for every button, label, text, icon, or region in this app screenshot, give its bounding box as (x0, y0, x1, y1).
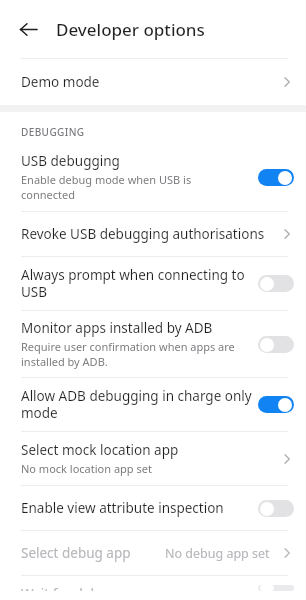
button[interactable]: Demo mode (0, 59, 306, 105)
button[interactable]: USB debugging toggle (0, 148, 306, 211)
button[interactable]: Wait for debugger toggle (0, 576, 306, 600)
staticText: USB debugging (21, 152, 120, 170)
button[interactable]: Always prompt when connecting to USB tog… (0, 257, 306, 310)
button[interactable]: Revoke USB debugging authorisations (0, 212, 306, 256)
staticText: Always prompt when connecting to USB (21, 266, 245, 301)
staticText: Wait for debugger (21, 585, 137, 591)
button[interactable]: Enable view attribute inspection toggle (0, 486, 306, 530)
staticText: Monitor apps installed by ADB (21, 319, 213, 337)
staticText: Allow ADB debugging in charge only mode (21, 387, 252, 422)
staticText: DEBUGGING (21, 125, 85, 139)
staticText: Select debug app (21, 544, 131, 562)
staticText: No debug app set (165, 545, 270, 562)
staticText: Developer options (56, 18, 205, 41)
staticText: Enable view attribute inspection (21, 499, 224, 517)
staticText: Require user confirmation when apps are … (21, 339, 235, 369)
staticText: Demo mode (21, 73, 100, 91)
button[interactable]: Select debug app (0, 531, 306, 575)
staticText: Enable debug mode when USB is connected (21, 172, 192, 202)
staticText: Revoke USB debugging authorisations (21, 225, 265, 243)
button[interactable]: Allow ADB debugging in charge only mode … (0, 378, 306, 431)
button[interactable]: Select mock location app (0, 432, 306, 485)
staticText: No mock location app set (21, 461, 152, 476)
staticText: Select mock location app (21, 441, 179, 459)
button[interactable]: Monitor apps installed by ADB toggle (0, 311, 306, 377)
button[interactable]: Back (12, 13, 44, 45)
